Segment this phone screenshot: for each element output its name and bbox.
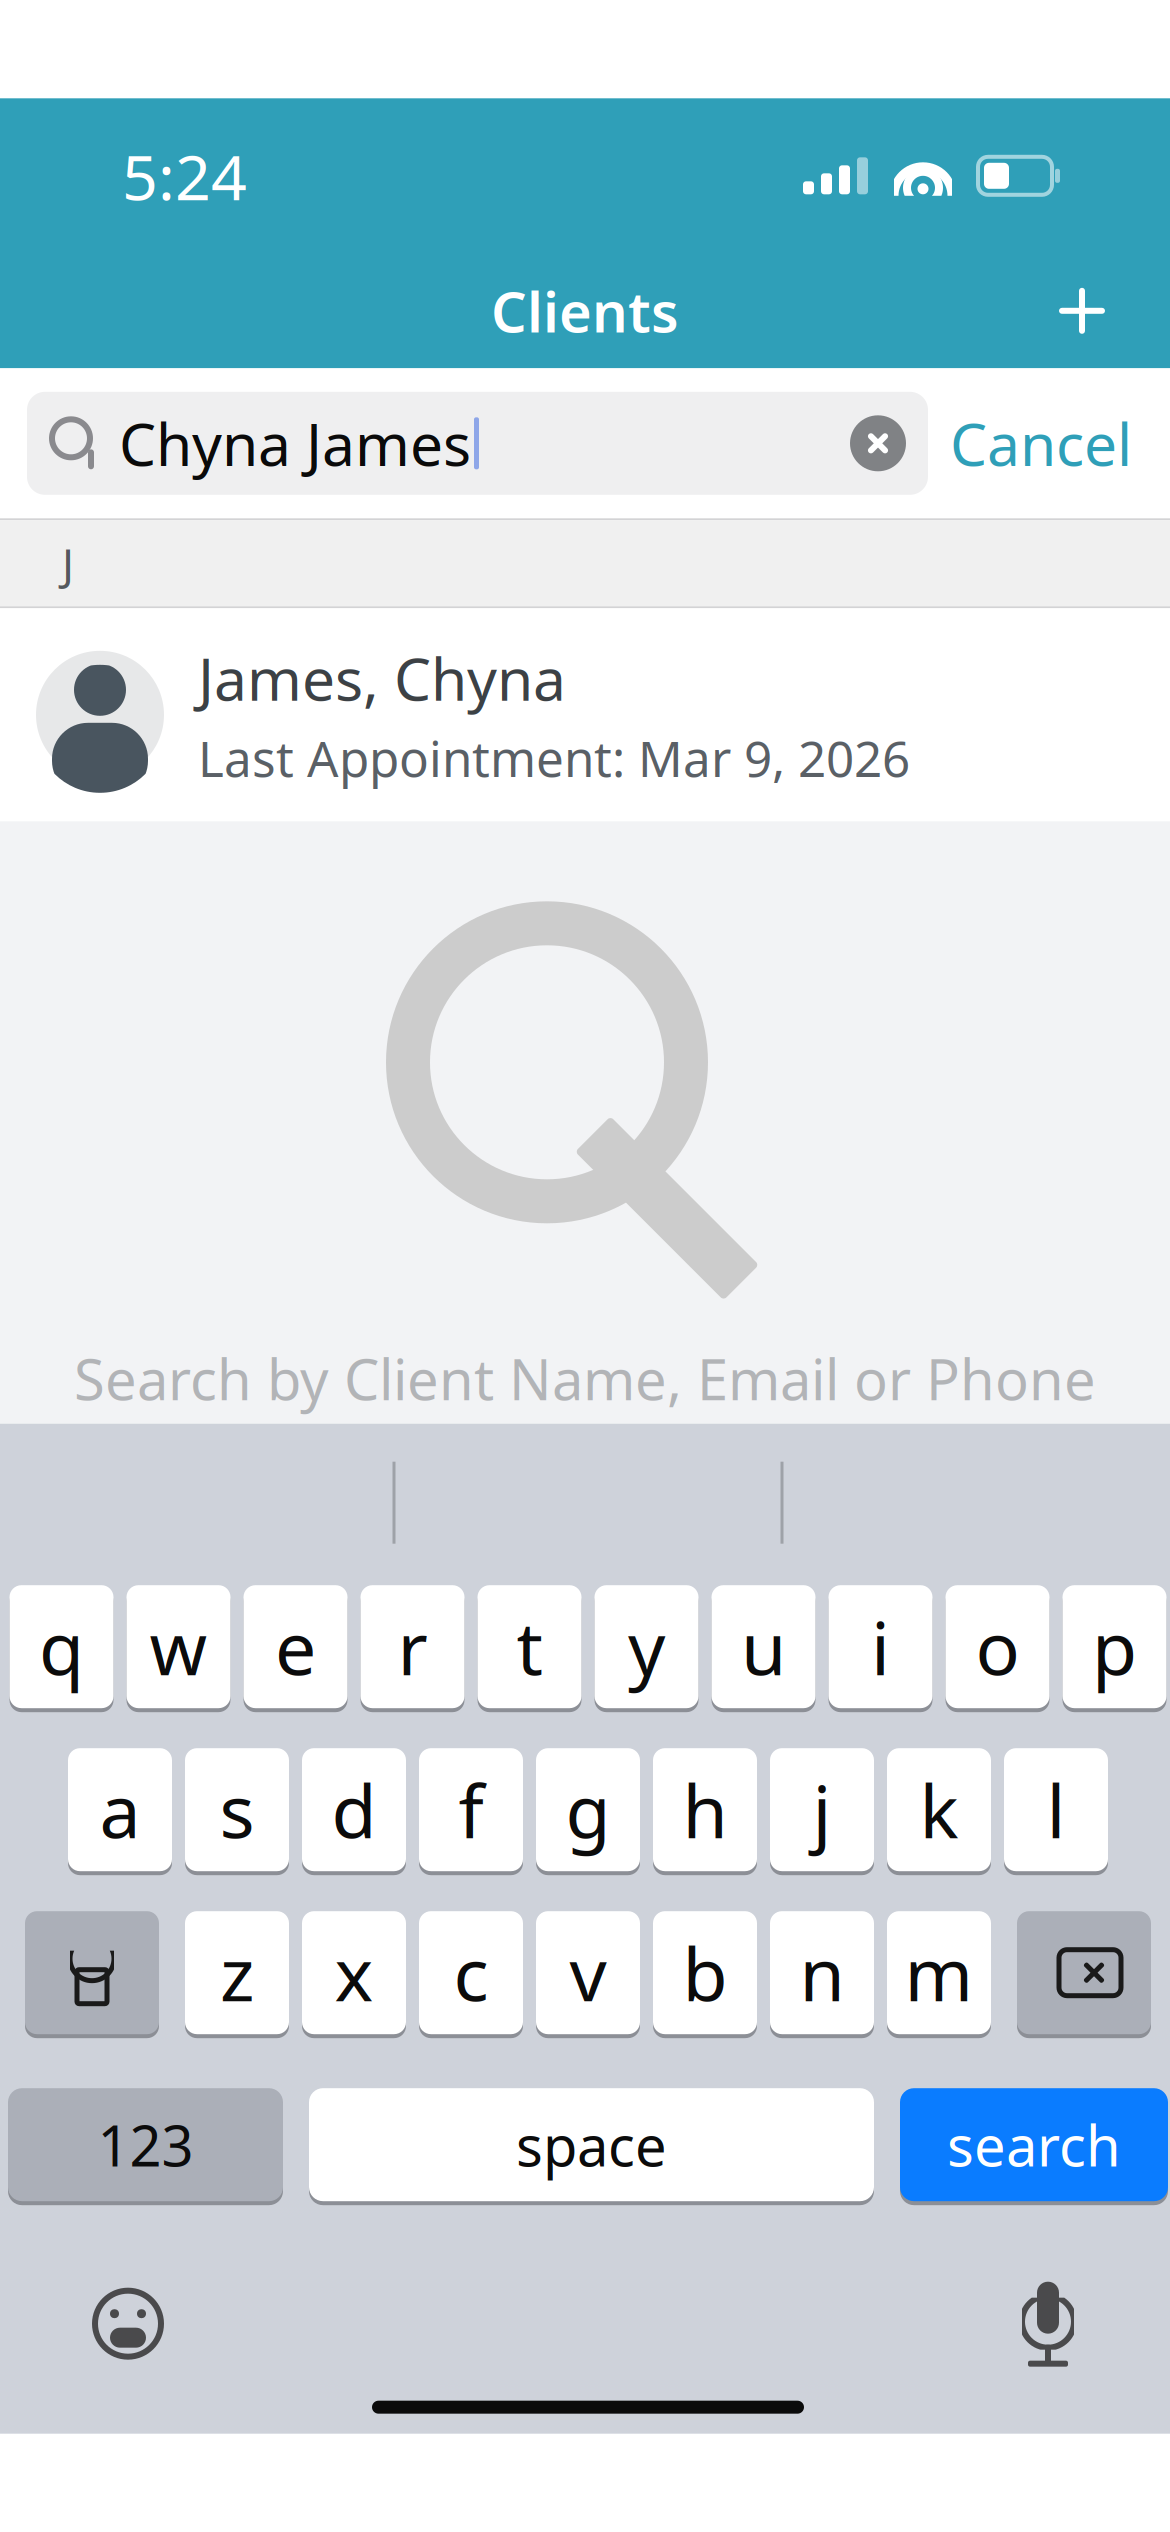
- button[interactable]: l: [1004, 1745, 1108, 1875]
- button[interactable]: James, Chyna: [0, 608, 1170, 821]
- staticText: w: [149, 1598, 207, 1695]
- button[interactable]: j: [770, 1745, 874, 1875]
- button[interactable]: 123: [8, 2085, 283, 2205]
- staticText: Cancel: [950, 404, 1132, 482]
- button[interactable]: Cancel: [928, 392, 1154, 495]
- button[interactable]: e: [243, 1582, 347, 1712]
- staticText: z: [220, 1924, 254, 2021]
- staticText: r: [397, 1598, 427, 1695]
- button[interactable]: h: [653, 1745, 757, 1875]
- button[interactable]: Add Client: [1032, 261, 1132, 361]
- staticText: d: [331, 1761, 376, 1858]
- staticText: c: [453, 1924, 488, 2021]
- staticText: Last Appointment: Mar 9, 2026: [198, 725, 910, 790]
- button[interactable]: u: [711, 1582, 815, 1712]
- button[interactable]: k: [887, 1745, 991, 1875]
- staticText: space: [516, 2107, 667, 2182]
- button[interactable]: p: [1062, 1582, 1166, 1712]
- button[interactable]: space: [309, 2085, 874, 2205]
- button[interactable]: i: [828, 1582, 932, 1712]
- button[interactable]: o: [945, 1582, 1049, 1712]
- staticText: m: [904, 1924, 973, 2021]
- staticText: e: [275, 1598, 316, 1695]
- button[interactable]: b: [653, 1908, 757, 2038]
- button[interactable]: q: [9, 1582, 113, 1712]
- button[interactable]: Emoji keyboard: [73, 2269, 183, 2379]
- staticText: q: [39, 1598, 84, 1695]
- staticText: y: [628, 1598, 665, 1695]
- button[interactable]: Delete: [1017, 1908, 1151, 2038]
- button[interactable]: Shift: [25, 1908, 159, 2038]
- button[interactable]: search: [900, 2085, 1168, 2205]
- button[interactable]: c: [419, 1908, 523, 2038]
- staticText: k: [919, 1761, 958, 1858]
- staticText: f: [458, 1761, 483, 1858]
- button[interactable]: f: [419, 1745, 523, 1875]
- button[interactable]: v: [536, 1908, 640, 2038]
- staticText: 5:24: [122, 134, 247, 217]
- staticText: J: [62, 534, 74, 592]
- button[interactable]: y: [594, 1582, 698, 1712]
- staticText: s: [219, 1761, 254, 1858]
- staticText: u: [741, 1598, 786, 1695]
- staticText: Clients: [491, 274, 679, 348]
- staticText: a: [99, 1761, 140, 1858]
- staticText: l: [1046, 1761, 1065, 1858]
- button[interactable]: w: [126, 1582, 230, 1712]
- button[interactable]: z: [185, 1908, 289, 2038]
- staticText: p: [1092, 1598, 1137, 1695]
- button[interactable]: Dictate: [993, 2269, 1103, 2379]
- staticText: 123: [97, 2107, 193, 2182]
- staticText: James, Chyna: [198, 639, 566, 717]
- staticText: i: [871, 1598, 890, 1695]
- staticText: o: [975, 1598, 1019, 1695]
- staticText: g: [565, 1761, 610, 1858]
- staticText: n: [799, 1924, 844, 2021]
- staticText: v: [569, 1924, 606, 2021]
- staticText: t: [516, 1598, 542, 1695]
- staticText: b: [682, 1924, 727, 2021]
- button[interactable]: d: [302, 1745, 406, 1875]
- staticText: Search by Client Name, Email or Phone: [74, 1341, 1096, 1416]
- button[interactable]: g: [536, 1745, 640, 1875]
- button[interactable]: m: [887, 1908, 991, 2038]
- button[interactable]: r: [360, 1582, 464, 1712]
- staticText: j: [812, 1761, 831, 1858]
- staticText: search: [947, 2107, 1121, 2182]
- button[interactable]: t: [477, 1582, 581, 1712]
- button[interactable]: a: [68, 1745, 172, 1875]
- button[interactable]: Clear text: [836, 401, 920, 485]
- button[interactable]: x: [302, 1908, 406, 2038]
- button[interactable]: s: [185, 1745, 289, 1875]
- staticText: Chyna James: [119, 404, 471, 482]
- staticText: x: [334, 1924, 373, 2021]
- staticText: h: [682, 1761, 727, 1858]
- button[interactable]: n: [770, 1908, 874, 2038]
